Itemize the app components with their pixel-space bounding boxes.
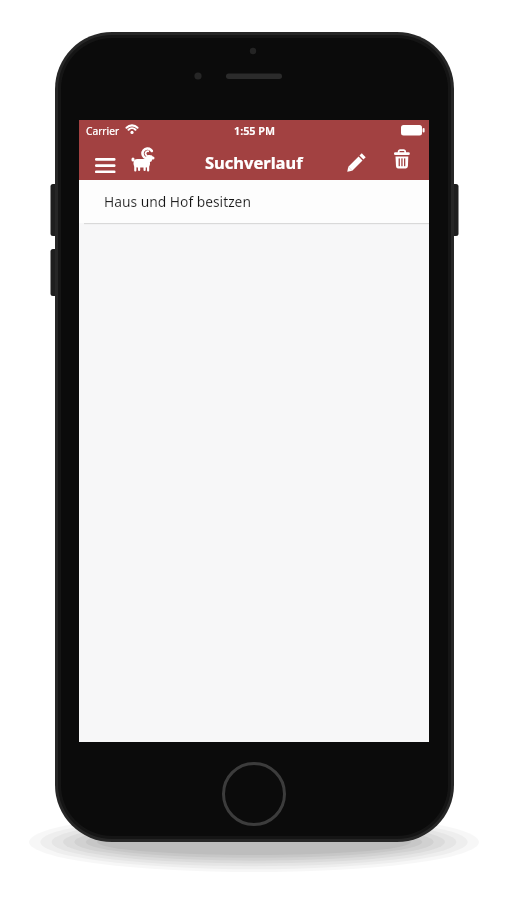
staticText: Haus und Hof besitzen <box>104 192 251 211</box>
button[interactable] <box>129 148 159 178</box>
staticText: Suchverlauf <box>205 151 303 173</box>
button[interactable]: Haus und Hof besitzen <box>79 180 429 223</box>
button[interactable] <box>343 148 371 176</box>
staticText: 1:55 PM <box>234 123 275 137</box>
staticText: Carrier <box>86 124 120 138</box>
button[interactable] <box>389 148 415 176</box>
button[interactable] <box>91 152 119 178</box>
